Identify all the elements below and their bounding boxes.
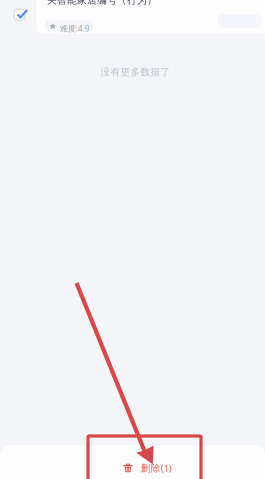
staticText: 难度:4.9	[60, 23, 90, 34]
button[interactable]: 删除(1)	[15, 451, 265, 479]
staticText: 没有更多数据了	[100, 66, 170, 78]
staticText: 关智能家居编号（行为）	[47, 0, 157, 7]
button[interactable]: 选择此题	[9, 4, 30, 25]
staticText: 删除(1)	[141, 461, 172, 475]
